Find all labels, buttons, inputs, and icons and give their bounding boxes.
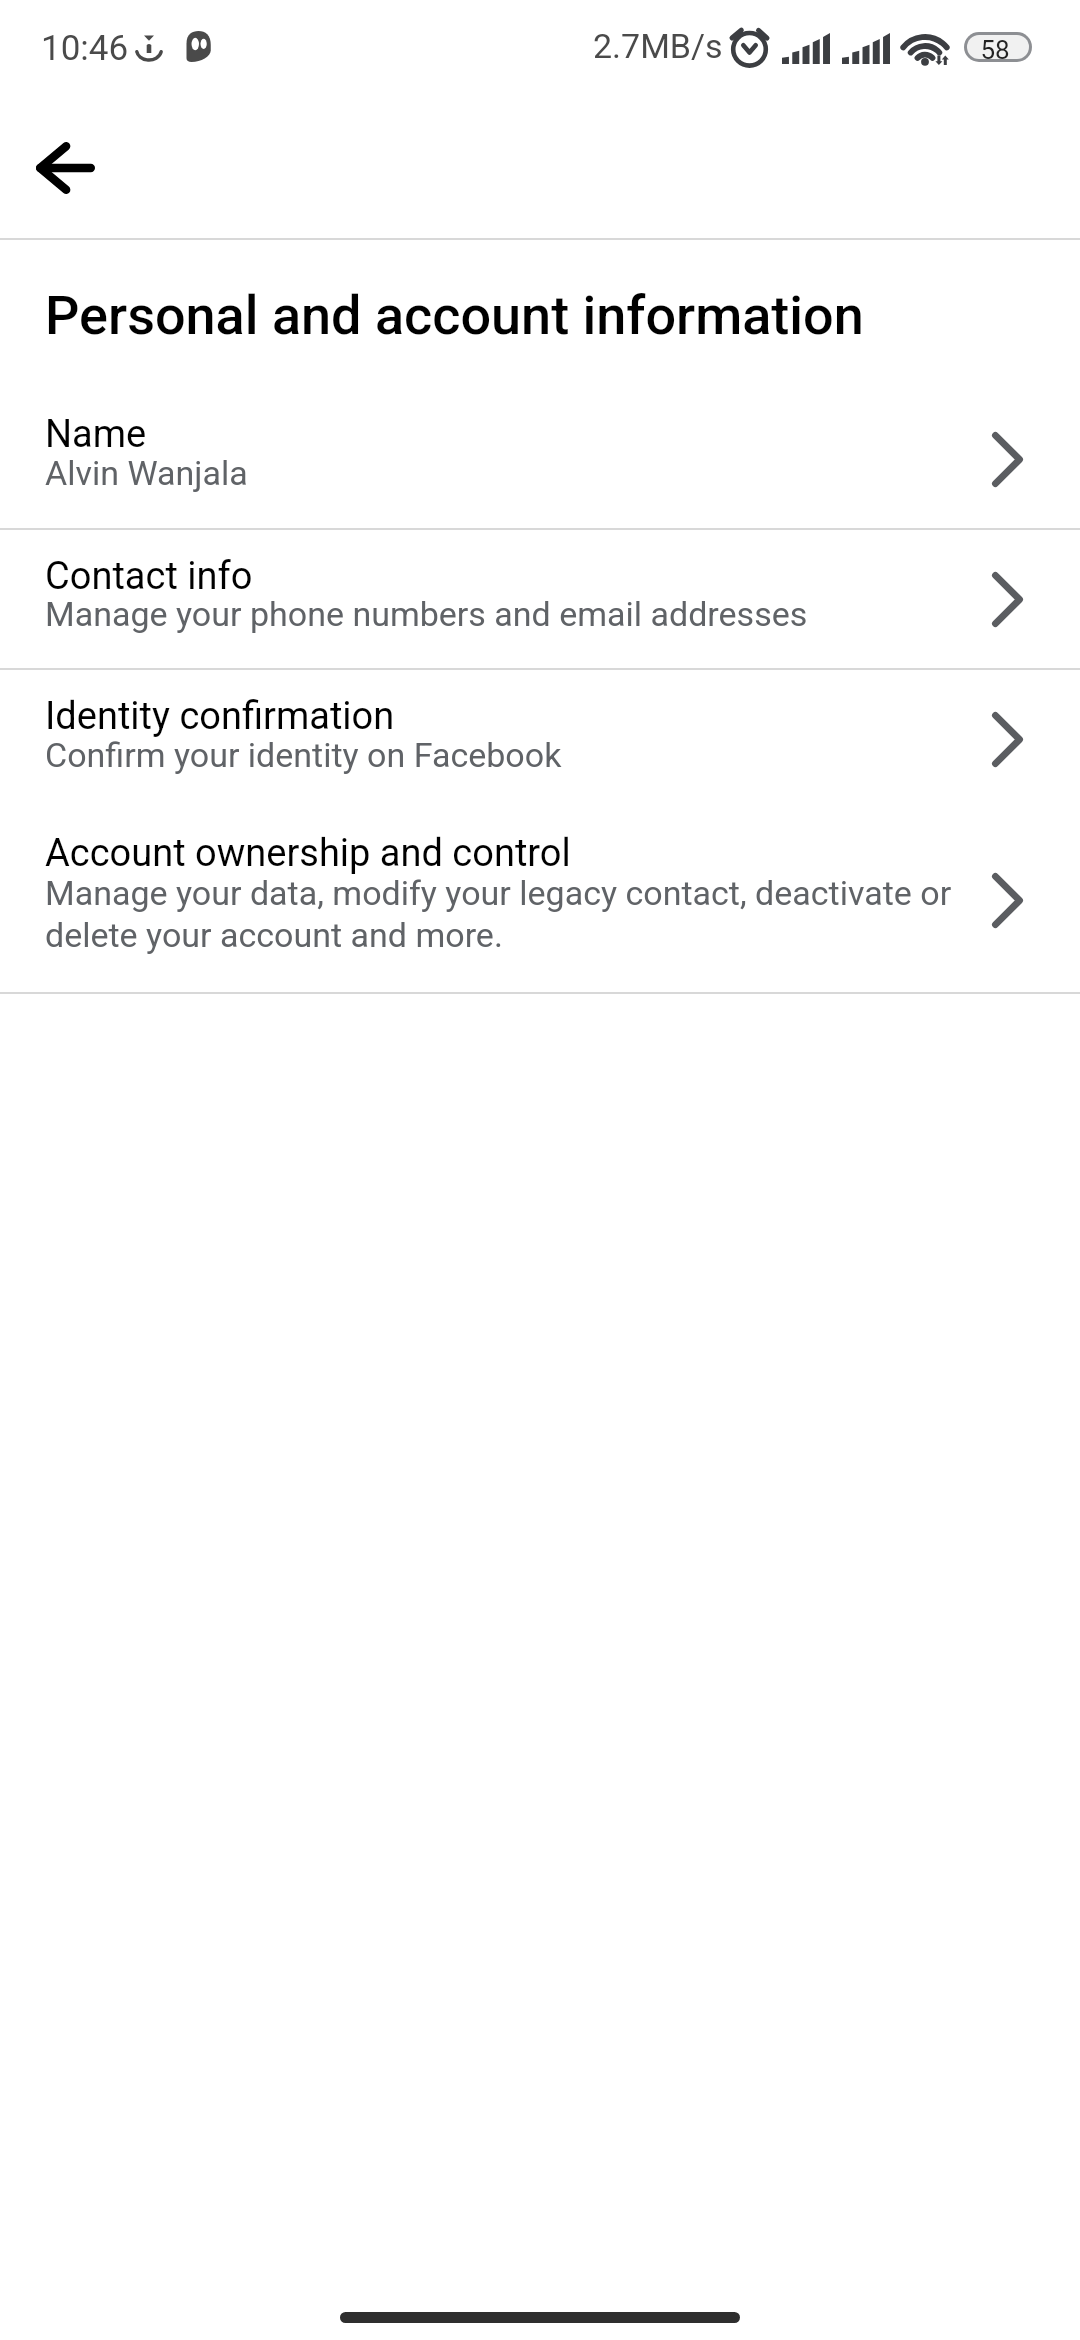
staticText: Personal and account information	[45, 284, 864, 347]
button[interactable]: Contact info	[0, 530, 1080, 668]
button[interactable]: Identity confirmation	[0, 670, 1080, 809]
staticText: Manage your data, modify your legacy con…	[45, 872, 965, 956]
staticText: 10:46	[41, 28, 129, 69]
staticText: Manage your phone numbers and email addr…	[45, 593, 975, 635]
staticText: 58	[980, 35, 1010, 59]
staticText: Account ownership and control	[45, 831, 571, 875]
staticText: Contact info	[45, 554, 253, 598]
button[interactable]: Account ownership and control	[0, 809, 1080, 992]
staticText: Confirm your identity on Facebook	[45, 734, 975, 776]
staticText: Name	[45, 412, 147, 456]
button[interactable]: Name	[0, 390, 1080, 528]
staticText: Alvin Wanjala	[45, 452, 975, 494]
staticText: Identity confirmation	[45, 694, 395, 738]
staticText: 2.7MB/s	[593, 26, 723, 66]
button[interactable]: Back	[20, 123, 110, 213]
